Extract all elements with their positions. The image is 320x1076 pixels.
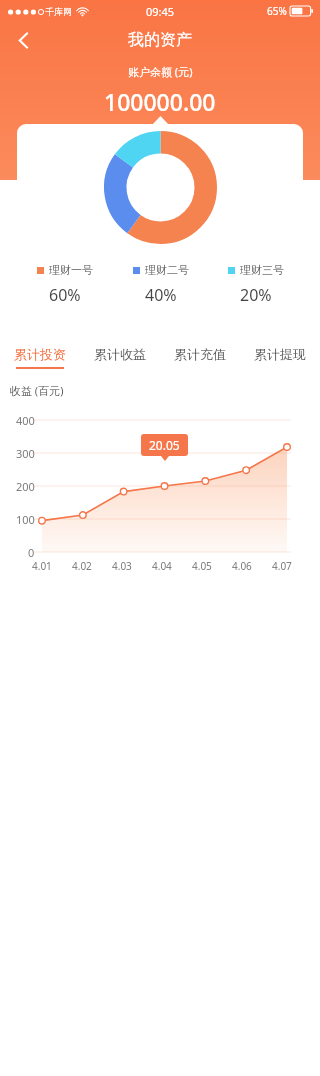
staticText: 收益 (百元) xyxy=(10,383,64,398)
staticText: 20.05 xyxy=(149,437,180,453)
button[interactable]: 理财三号 xyxy=(208,263,303,277)
staticText: 200 xyxy=(16,479,35,494)
staticText: 60% xyxy=(49,284,81,306)
button[interactable]: Back xyxy=(5,22,41,58)
staticText: 0 xyxy=(28,545,35,560)
staticText: 4.03 xyxy=(112,559,132,573)
staticText: 累计充值 xyxy=(174,346,226,362)
staticText: 20% xyxy=(240,284,272,306)
staticText: 账户余额 (元) xyxy=(128,64,193,79)
staticText: 理财二号 xyxy=(145,263,189,277)
staticText: 4.01 xyxy=(32,559,52,573)
staticText: 4.05 xyxy=(192,559,212,573)
button[interactable]: 理财二号 xyxy=(113,263,208,277)
button[interactable]: 累计提现 xyxy=(240,338,320,376)
staticText: 4.04 xyxy=(152,559,172,573)
staticText: 300 xyxy=(16,446,35,461)
staticText: 4.02 xyxy=(72,559,92,573)
staticText: 累计提现 xyxy=(254,346,306,362)
staticText: 千库网 xyxy=(45,6,72,17)
staticText: 我的资产 xyxy=(128,30,192,50)
staticText: 09:45 xyxy=(146,4,175,19)
staticText: 100 xyxy=(16,512,35,527)
staticText: 400 xyxy=(16,413,35,428)
staticText: 累计收益 xyxy=(94,346,146,362)
button[interactable]: 累计投资 xyxy=(0,338,80,376)
button[interactable]: 理财一号 xyxy=(17,263,113,277)
staticText: 100000.00 xyxy=(104,86,216,117)
button[interactable]: 累计收益 xyxy=(80,338,160,376)
staticText: 4.06 xyxy=(232,559,252,573)
staticText: 累计投资 xyxy=(14,346,66,362)
button[interactable]: 累计充值 xyxy=(160,338,240,376)
staticText: 理财一号 xyxy=(49,263,93,277)
staticText: 65% xyxy=(267,4,287,18)
staticText: 40% xyxy=(145,284,177,306)
staticText: 理财三号 xyxy=(240,263,284,277)
staticText: 4.07 xyxy=(272,559,292,573)
